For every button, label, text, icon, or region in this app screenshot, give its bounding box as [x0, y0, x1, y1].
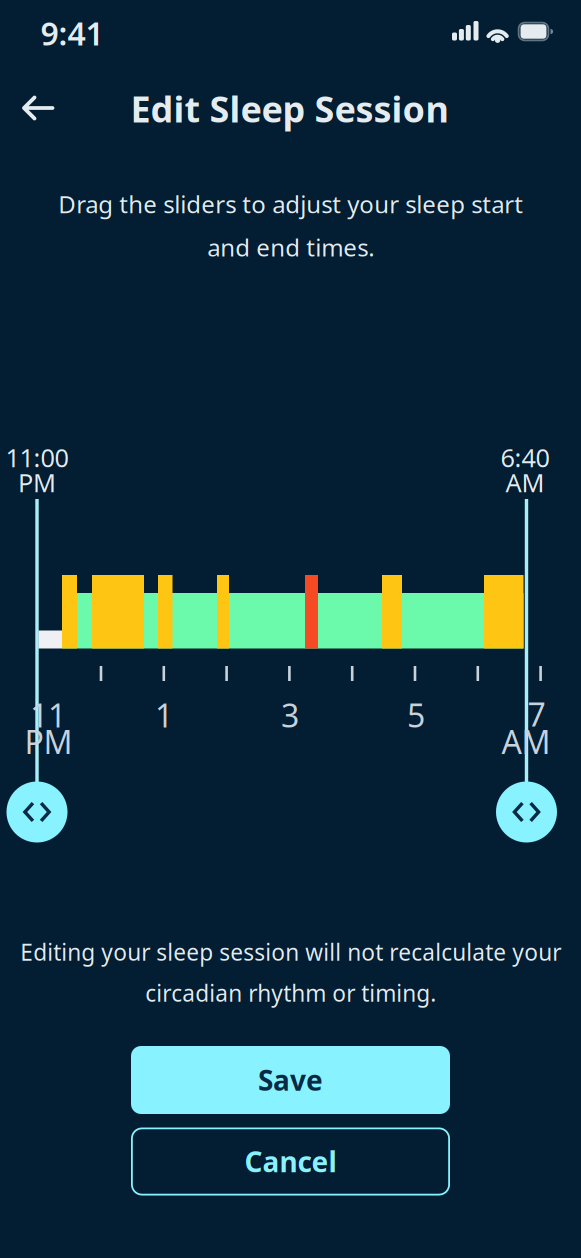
button[interactable]	[0, 0, 581, 1258]
staticText: Edit Sleep Session	[130, 85, 448, 132]
staticText: Drag the sliders to adjust your sleep st…	[58, 188, 523, 263]
button[interactable]: Cancel	[131, 1127, 450, 1195]
button[interactable]: Save	[131, 1046, 450, 1114]
staticText: 3	[281, 694, 299, 736]
button[interactable]	[496, 781, 557, 842]
staticText: 11	[30, 694, 66, 736]
staticText: PM	[24, 720, 72, 763]
staticText: Cancel	[244, 1143, 336, 1180]
staticText: 9:41	[40, 12, 103, 54]
staticText: PM	[18, 466, 56, 499]
staticText: AM	[505, 466, 544, 499]
staticText: 6:40	[500, 441, 549, 474]
button[interactable]	[6, 781, 67, 842]
staticText: 11:00	[5, 441, 68, 474]
staticText: 7	[527, 693, 545, 735]
staticText: 5	[407, 694, 425, 736]
staticText: AM	[501, 720, 550, 763]
staticText: Editing your sleep session will not reca…	[20, 937, 561, 1008]
staticText: 1	[155, 694, 173, 736]
staticText: Save	[258, 1061, 323, 1099]
